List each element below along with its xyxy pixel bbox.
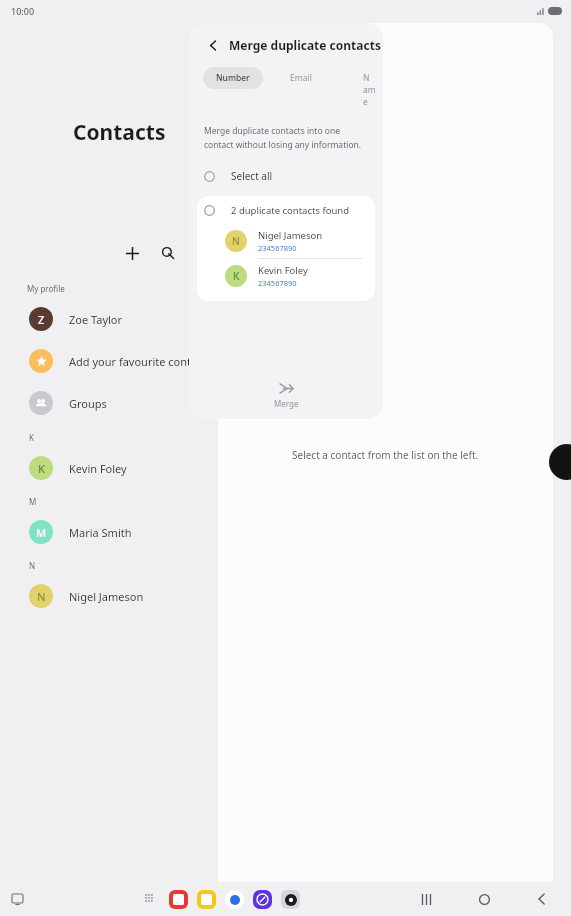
staticText: Merge duplicate contacts into one contac… (204, 125, 365, 150)
button[interactable]: Recents (6, 888, 28, 910)
staticText: Number (216, 72, 250, 84)
staticText: N (37, 589, 46, 604)
button[interactable]: Messages (225, 890, 244, 909)
staticText: Select a contact from the list on the le… (292, 448, 479, 462)
button[interactable]: K (197, 259, 375, 293)
button[interactable]: Edge panel (549, 444, 571, 480)
staticText: Nigel Jameson (69, 589, 144, 604)
button[interactable]: Camera (281, 890, 300, 909)
staticText: Add your favourite contacts (69, 354, 212, 369)
button[interactable]: N (197, 224, 375, 258)
button[interactable]: My Files (197, 890, 216, 909)
staticText: Contacts (73, 118, 166, 147)
button[interactable]: Recent apps (411, 884, 441, 914)
staticText: Merge (274, 398, 299, 409)
button[interactable]: M (0, 511, 218, 553)
button[interactable]: Back (203, 35, 223, 55)
staticText: Merge duplicate contacts (229, 37, 381, 53)
staticText: Maria Smith (69, 525, 132, 540)
staticText: My profile (27, 283, 65, 294)
staticText: N (29, 560, 36, 571)
button[interactable]: K (0, 447, 218, 489)
staticText: M (29, 496, 37, 507)
button[interactable]: All apps (139, 888, 161, 910)
staticText: Email (290, 72, 312, 84)
staticText: Name (363, 72, 370, 108)
button[interactable]: Search (154, 239, 182, 267)
button[interactable]: Number (203, 67, 263, 89)
staticText: Zoe Taylor (69, 312, 123, 327)
staticText: Nigel Jameson (258, 229, 323, 242)
button[interactable]: Name (350, 67, 383, 113)
staticText: Kevin Foley (69, 461, 127, 476)
button[interactable]: Z (0, 298, 218, 340)
button[interactable]: Groups (0, 382, 218, 424)
button[interactable]: Add contact (118, 239, 146, 267)
button[interactable]: Back (527, 884, 557, 914)
staticText: 10:00 (11, 5, 35, 17)
button[interactable]: App (169, 890, 188, 909)
button[interactable]: Select all (189, 164, 383, 188)
staticText: N (232, 234, 240, 248)
staticText: Kevin Foley (258, 264, 308, 277)
staticText: 234567890 (258, 278, 297, 288)
button[interactable]: Internet (253, 890, 272, 909)
staticText: K (29, 432, 34, 443)
button[interactable]: N (0, 575, 218, 617)
button[interactable]: Home (469, 884, 499, 914)
button[interactable]: Merge (189, 382, 383, 419)
button[interactable]: Email (277, 67, 325, 89)
staticText: 234567890 (258, 243, 297, 253)
staticText: 2 duplicate contacts found (231, 204, 350, 217)
staticText: K (233, 269, 240, 283)
staticText: Groups (69, 396, 107, 411)
staticText: M (36, 525, 47, 540)
staticText: Z (38, 312, 45, 327)
staticText: K (38, 461, 45, 476)
staticText: Select all (231, 169, 273, 183)
button[interactable]: 2 duplicate contacts found (197, 196, 375, 224)
button[interactable]: Add your favourite contacts (0, 340, 218, 382)
